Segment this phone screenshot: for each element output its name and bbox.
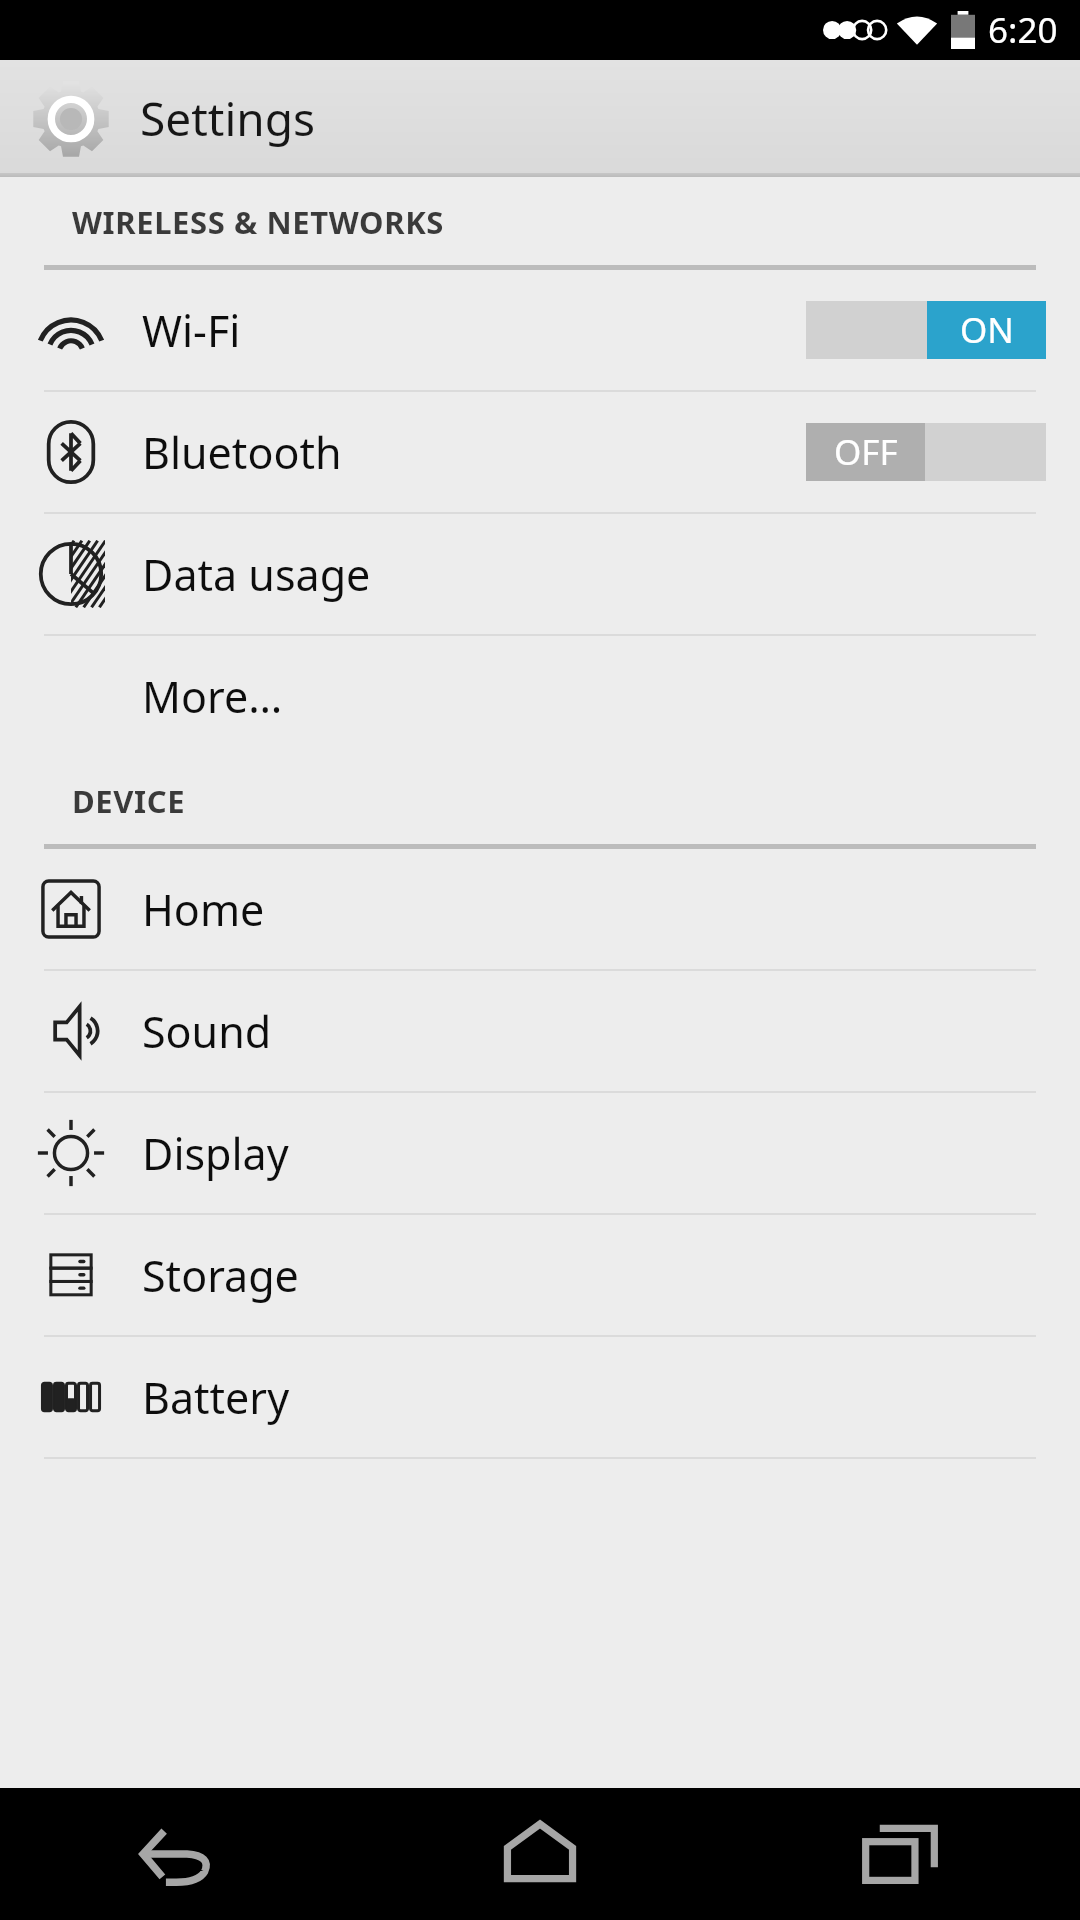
button[interactable]: Recent apps	[720, 1788, 1080, 1920]
staticText: Home	[142, 880, 265, 939]
staticText: Settings	[140, 87, 316, 150]
staticText: Sound	[142, 1002, 272, 1061]
button[interactable]: Data usage	[0, 514, 1080, 634]
button[interactable]: OFF	[806, 423, 1046, 481]
staticText: Storage	[142, 1246, 299, 1305]
button[interactable]: Back	[0, 1788, 360, 1920]
staticText: ON	[960, 306, 1014, 354]
staticText: WIRELESS & NETWORKS	[72, 201, 444, 243]
staticText: More…	[142, 667, 283, 726]
staticText: Bluetooth	[142, 423, 342, 482]
button[interactable]: Home	[360, 1788, 720, 1920]
staticText: Data usage	[142, 545, 371, 604]
button[interactable]: Storage	[0, 1215, 1080, 1335]
button[interactable]: Home	[0, 849, 1080, 969]
staticText: Display	[142, 1124, 289, 1183]
button[interactable]: ON	[806, 301, 1046, 359]
staticText: 6:20	[988, 6, 1058, 54]
staticText: Battery	[142, 1368, 290, 1427]
button[interactable]: Bluetooth	[0, 392, 1080, 512]
button[interactable]: Display	[0, 1093, 1080, 1213]
button[interactable]: Sound	[0, 971, 1080, 1091]
staticText: DEVICE	[72, 780, 186, 822]
button[interactable]: Battery	[0, 1337, 1080, 1457]
staticText: OFF	[834, 428, 898, 476]
button[interactable]: More…	[0, 636, 1080, 756]
staticText: Wi-Fi	[142, 301, 241, 360]
button[interactable]: Wi-Fi	[0, 270, 1080, 390]
